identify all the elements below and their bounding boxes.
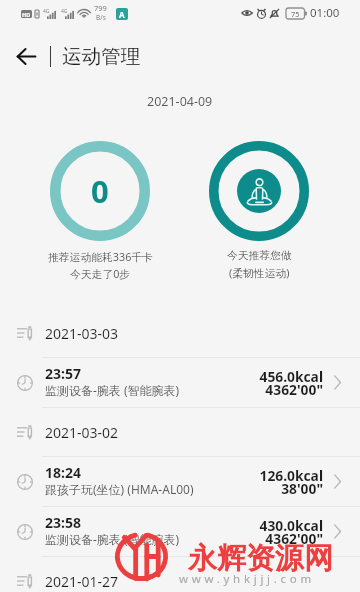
staticText: 跟孩子玩(坐位) (HMA-AL00) (45, 481, 194, 497)
staticText: 4G (43, 8, 50, 15)
staticText: 38'00" (281, 479, 323, 498)
staticText: 监测设备-腕表 (智能腕表) (45, 531, 180, 547)
staticText: 2021-01-27 (45, 572, 119, 591)
staticText: 监测设备-腕表 (智能腕表) (45, 382, 180, 398)
staticText: 运动管理 (62, 44, 140, 69)
button[interactable]: Recommended flexibility exercise (209, 141, 309, 241)
button[interactable]: Back (10, 40, 42, 72)
staticText: 2021-03-03 (45, 324, 119, 343)
staticText: 799 (94, 3, 107, 13)
staticText: 2021-04-09 (147, 93, 213, 110)
staticText: 今天走了0步 (70, 266, 131, 281)
staticText: 4362'00" (265, 380, 323, 399)
staticText: B/s (96, 13, 106, 22)
staticText: 0 (91, 170, 109, 212)
staticText: 456.0kcal (259, 367, 323, 386)
staticText: 430.0kcal (259, 516, 323, 535)
button[interactable]: 23:58 (0, 507, 360, 556)
staticText: 75 (291, 9, 300, 19)
staticText: 今天推荐您做 (227, 249, 292, 263)
staticText: 推荐运动能耗336千卡 (48, 249, 153, 264)
staticText: 126.0kcal (259, 466, 323, 485)
staticText: HD (22, 11, 31, 18)
staticText: 4G (61, 8, 68, 15)
staticText: 23:58 (45, 513, 81, 532)
staticText: 01:00 (310, 5, 340, 21)
staticText: www.yhkjjj.com (179, 571, 315, 587)
button[interactable]: 2021-01-27 (0, 557, 360, 592)
button[interactable]: 18:24 (0, 457, 360, 506)
staticText: 4362'00" (265, 529, 323, 548)
button[interactable]: 2021-03-03 (0, 309, 360, 357)
staticText: 2021-03-02 (45, 423, 119, 442)
staticText: 23:57 (45, 364, 81, 383)
button[interactable]: 2021-03-02 (0, 408, 360, 456)
staticText: 永辉资源网 (188, 540, 333, 577)
button[interactable]: 23:57 (0, 358, 360, 407)
staticText: A (119, 9, 125, 20)
staticText: 18:24 (45, 463, 81, 482)
staticText: (柔韧性运动) (229, 265, 290, 280)
button[interactable]: 0 (50, 141, 150, 241)
